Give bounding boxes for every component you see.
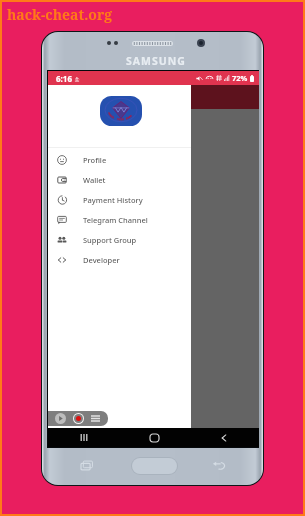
staticText: 6:16 bbox=[56, 73, 72, 84]
staticText: Developer bbox=[83, 255, 120, 265]
staticText: hack-cheat.org bbox=[7, 5, 113, 24]
button[interactable]: Support Group bbox=[48, 230, 191, 250]
button[interactable]: Record bbox=[74, 414, 83, 423]
staticText: SAMSUNG bbox=[126, 54, 186, 68]
staticText: Payment History bbox=[83, 195, 143, 205]
staticText: 72% bbox=[232, 73, 248, 83]
button[interactable]: Play bbox=[55, 413, 66, 424]
button[interactable]: Menu bbox=[90, 413, 101, 424]
button[interactable]: Telegram Channel bbox=[48, 210, 191, 230]
other: Back bbox=[212, 460, 226, 471]
button[interactable]: Back bbox=[189, 428, 259, 447]
staticText: Profile bbox=[83, 155, 107, 165]
button[interactable]: Developer bbox=[48, 250, 191, 270]
button[interactable]: Wallet bbox=[48, 170, 191, 190]
button[interactable]: Home bbox=[119, 428, 189, 447]
button[interactable]: Recents bbox=[48, 428, 119, 447]
staticText: Telegram Channel bbox=[83, 215, 148, 225]
button[interactable]: Profile bbox=[48, 150, 191, 170]
button[interactable]: Payment History bbox=[48, 190, 191, 210]
other: Recent apps bbox=[81, 460, 94, 471]
button[interactable]: App logo bbox=[100, 96, 142, 126]
button[interactable]: Home button bbox=[132, 458, 177, 474]
staticText: Support Group bbox=[83, 235, 137, 245]
staticText: Wallet bbox=[83, 175, 106, 185]
